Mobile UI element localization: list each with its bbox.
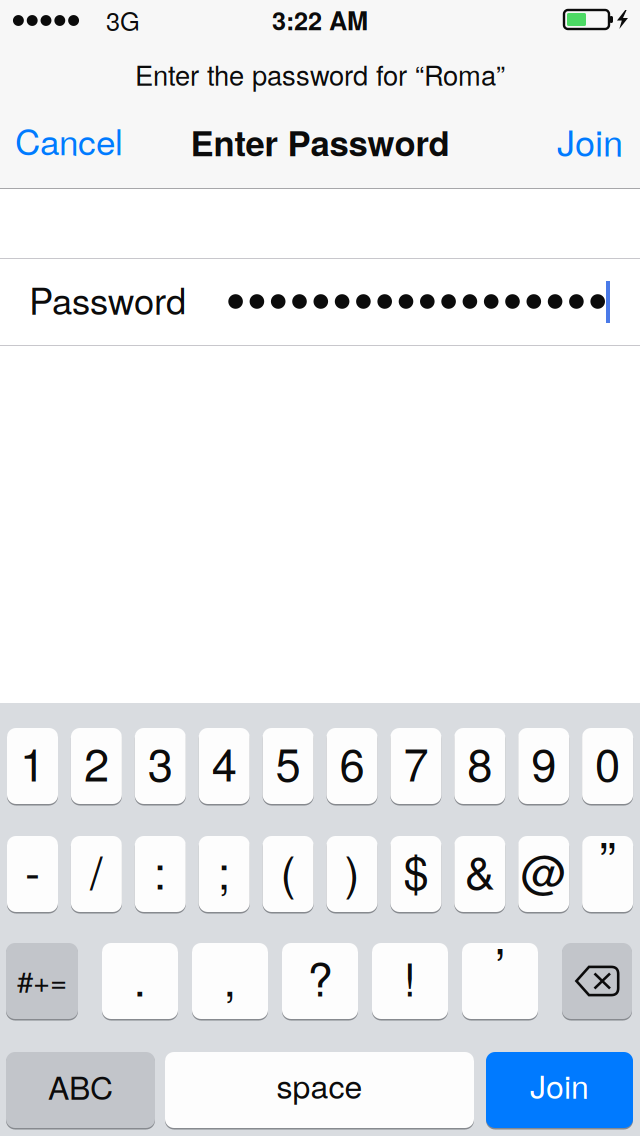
staticText: / [90,837,103,902]
staticText: #+= [17,959,67,1001]
staticText: ABC [48,1063,113,1109]
button[interactable]: - [0,0,640,1136]
staticText: , [223,944,236,1009]
button[interactable]: 3 [0,0,640,1136]
staticText: 5 [276,729,301,794]
staticText: & [465,837,495,902]
staticText: Join [557,115,623,167]
button[interactable]: 4 [0,0,640,1136]
staticText: ” [599,821,616,893]
button[interactable]: ; [0,0,640,1136]
button[interactable]: Cancel [0,98,180,182]
button[interactable]: 0 [0,0,640,1136]
button[interactable]: 5 [0,0,640,1136]
staticText: 2 [84,729,109,794]
staticText: - [25,837,40,902]
button[interactable]: : [0,0,640,1136]
staticText: 3 [148,729,173,794]
button[interactable]: 1 [0,0,640,1136]
button[interactable]: Join [463,99,640,183]
button[interactable]: 9 [0,0,640,1136]
button[interactable]: , [0,0,640,1136]
staticText: 9 [531,729,556,794]
staticText: 1 [20,729,45,794]
button[interactable]: $ [0,0,640,1136]
staticText: space [276,1062,362,1108]
button[interactable]: Delete [0,0,640,1136]
staticText: ) [344,837,359,902]
button[interactable]: #+= [0,0,640,1136]
button[interactable]: / [0,0,640,1136]
button[interactable]: @ [0,0,640,1136]
button[interactable]: Join [0,0,640,1136]
staticText: . [133,944,146,1009]
staticText: Enter Password [190,117,449,167]
staticText: ? [307,944,332,1009]
button[interactable]: space [0,0,640,1136]
staticText: @ [521,837,567,902]
button[interactable]: ? [0,0,640,1136]
staticText: Join [530,1062,589,1108]
button[interactable]: & [0,0,640,1136]
button[interactable]: 2 [0,0,640,1136]
staticText: Cancel [15,115,123,165]
staticText: $ [403,837,428,902]
staticText: : [154,837,167,902]
button[interactable]: ( [0,0,640,1136]
staticText: ’ [494,928,505,1000]
staticText: Password [29,273,186,325]
button[interactable]: 7 [0,0,640,1136]
staticText: 7 [403,729,428,794]
staticText: Enter the password for “Roma” [135,54,505,93]
staticText: 3G [106,2,140,38]
button[interactable]: . [0,0,640,1136]
staticText: 8 [467,729,492,794]
staticText: ! [403,944,416,1009]
staticText: 4 [212,729,237,794]
staticText: 0 [595,729,620,794]
button[interactable]: ! [0,0,640,1136]
staticText: 3:22 AM [272,2,368,38]
button[interactable]: 8 [0,0,640,1136]
staticText: ; [218,837,231,902]
staticText: ( [281,837,296,902]
button[interactable]: ) [0,0,640,1136]
staticText: 6 [339,729,364,794]
button[interactable]: ’ [0,0,640,1136]
button[interactable]: ABC [0,0,640,1136]
button[interactable]: 6 [0,0,640,1136]
button[interactable]: ” [0,0,640,1136]
